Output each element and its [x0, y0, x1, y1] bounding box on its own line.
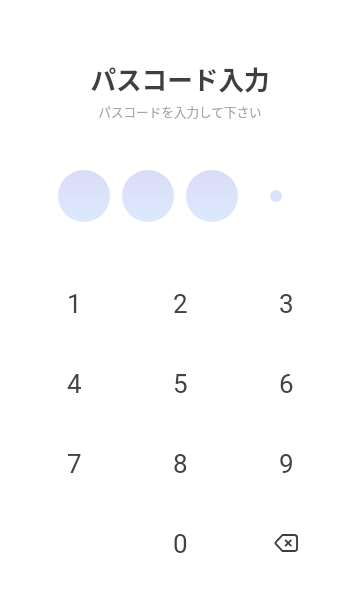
button[interactable]: 7	[21, 424, 127, 504]
staticText: 5	[173, 369, 188, 399]
staticText: 9	[279, 449, 294, 479]
staticText: 0	[173, 529, 188, 559]
staticText: パスコード入力	[90, 60, 270, 97]
button[interactable]: 9	[233, 424, 339, 504]
staticText: 1	[67, 289, 82, 319]
button[interactable]: 3	[233, 264, 339, 344]
staticText: 2	[173, 289, 188, 319]
button[interactable]: 8	[127, 424, 233, 504]
staticText: 7	[67, 449, 82, 479]
staticText: 4	[67, 369, 82, 399]
button[interactable]: 2	[127, 264, 233, 344]
staticText: 8	[173, 449, 188, 479]
staticText: 6	[279, 369, 294, 399]
button[interactable]: 1	[21, 264, 127, 344]
staticText: 3	[279, 289, 294, 319]
button[interactable]: 4	[21, 344, 127, 424]
button[interactable]: 5	[127, 344, 233, 424]
button[interactable]: 0	[127, 504, 233, 584]
button[interactable]: 6	[233, 344, 339, 424]
staticText: パスコードを入力して下さい	[98, 102, 262, 120]
button[interactable]: Backspace	[233, 504, 339, 584]
